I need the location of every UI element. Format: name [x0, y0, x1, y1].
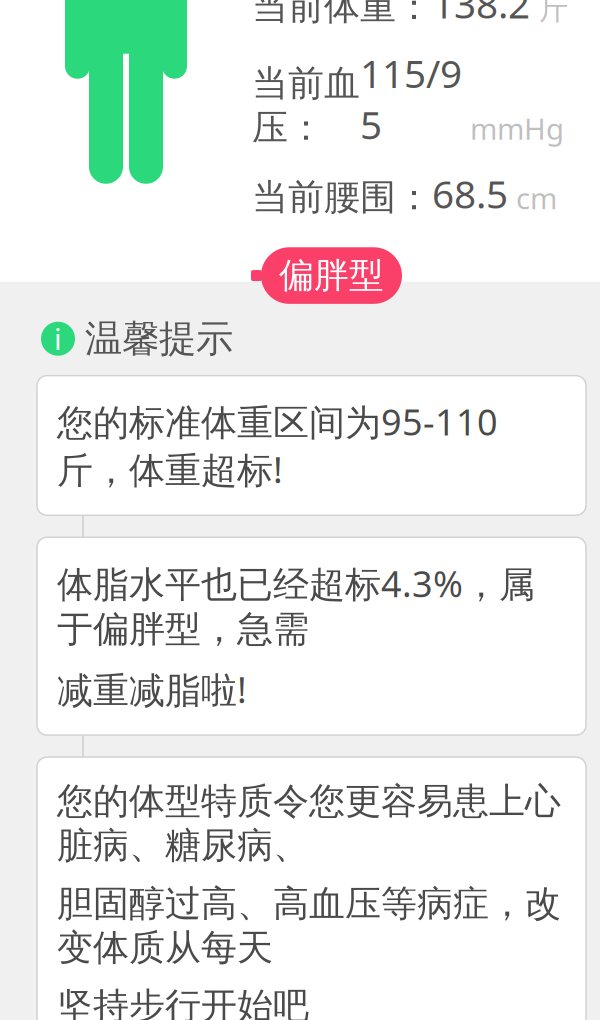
staticText: 您的体型特质令您更容易患上心脏病、糖尿病、 [57, 779, 561, 867]
staticText: 温馨提示 [85, 316, 233, 362]
staticText: 减重减脂啦! [57, 665, 247, 713]
staticText: 115/95 [360, 47, 462, 150]
staticText: mmHg [462, 109, 564, 148]
staticText: 胆固醇过高、高血压等病症，改变体质从每天 [57, 881, 561, 970]
staticText: 偏胖型 [279, 254, 384, 297]
staticText: 68.5 [432, 168, 508, 219]
staticText: 当前体重： [252, 0, 432, 29]
staticText: 当前血压： [252, 61, 360, 150]
staticText: 斤 [530, 0, 568, 27]
staticText: i [54, 319, 62, 358]
staticText: 坚持步行开始吧 [57, 984, 309, 1020]
staticText: 您的标准体重区间为95-110斤，体重超标! [57, 398, 498, 493]
staticText: 体脂水平也已经超标4.3%，属于偏胖型，急需 [57, 559, 535, 651]
staticText: cm [508, 178, 557, 217]
staticText: 138.2 [432, 0, 530, 29]
staticText: 当前腰围： [252, 175, 432, 219]
